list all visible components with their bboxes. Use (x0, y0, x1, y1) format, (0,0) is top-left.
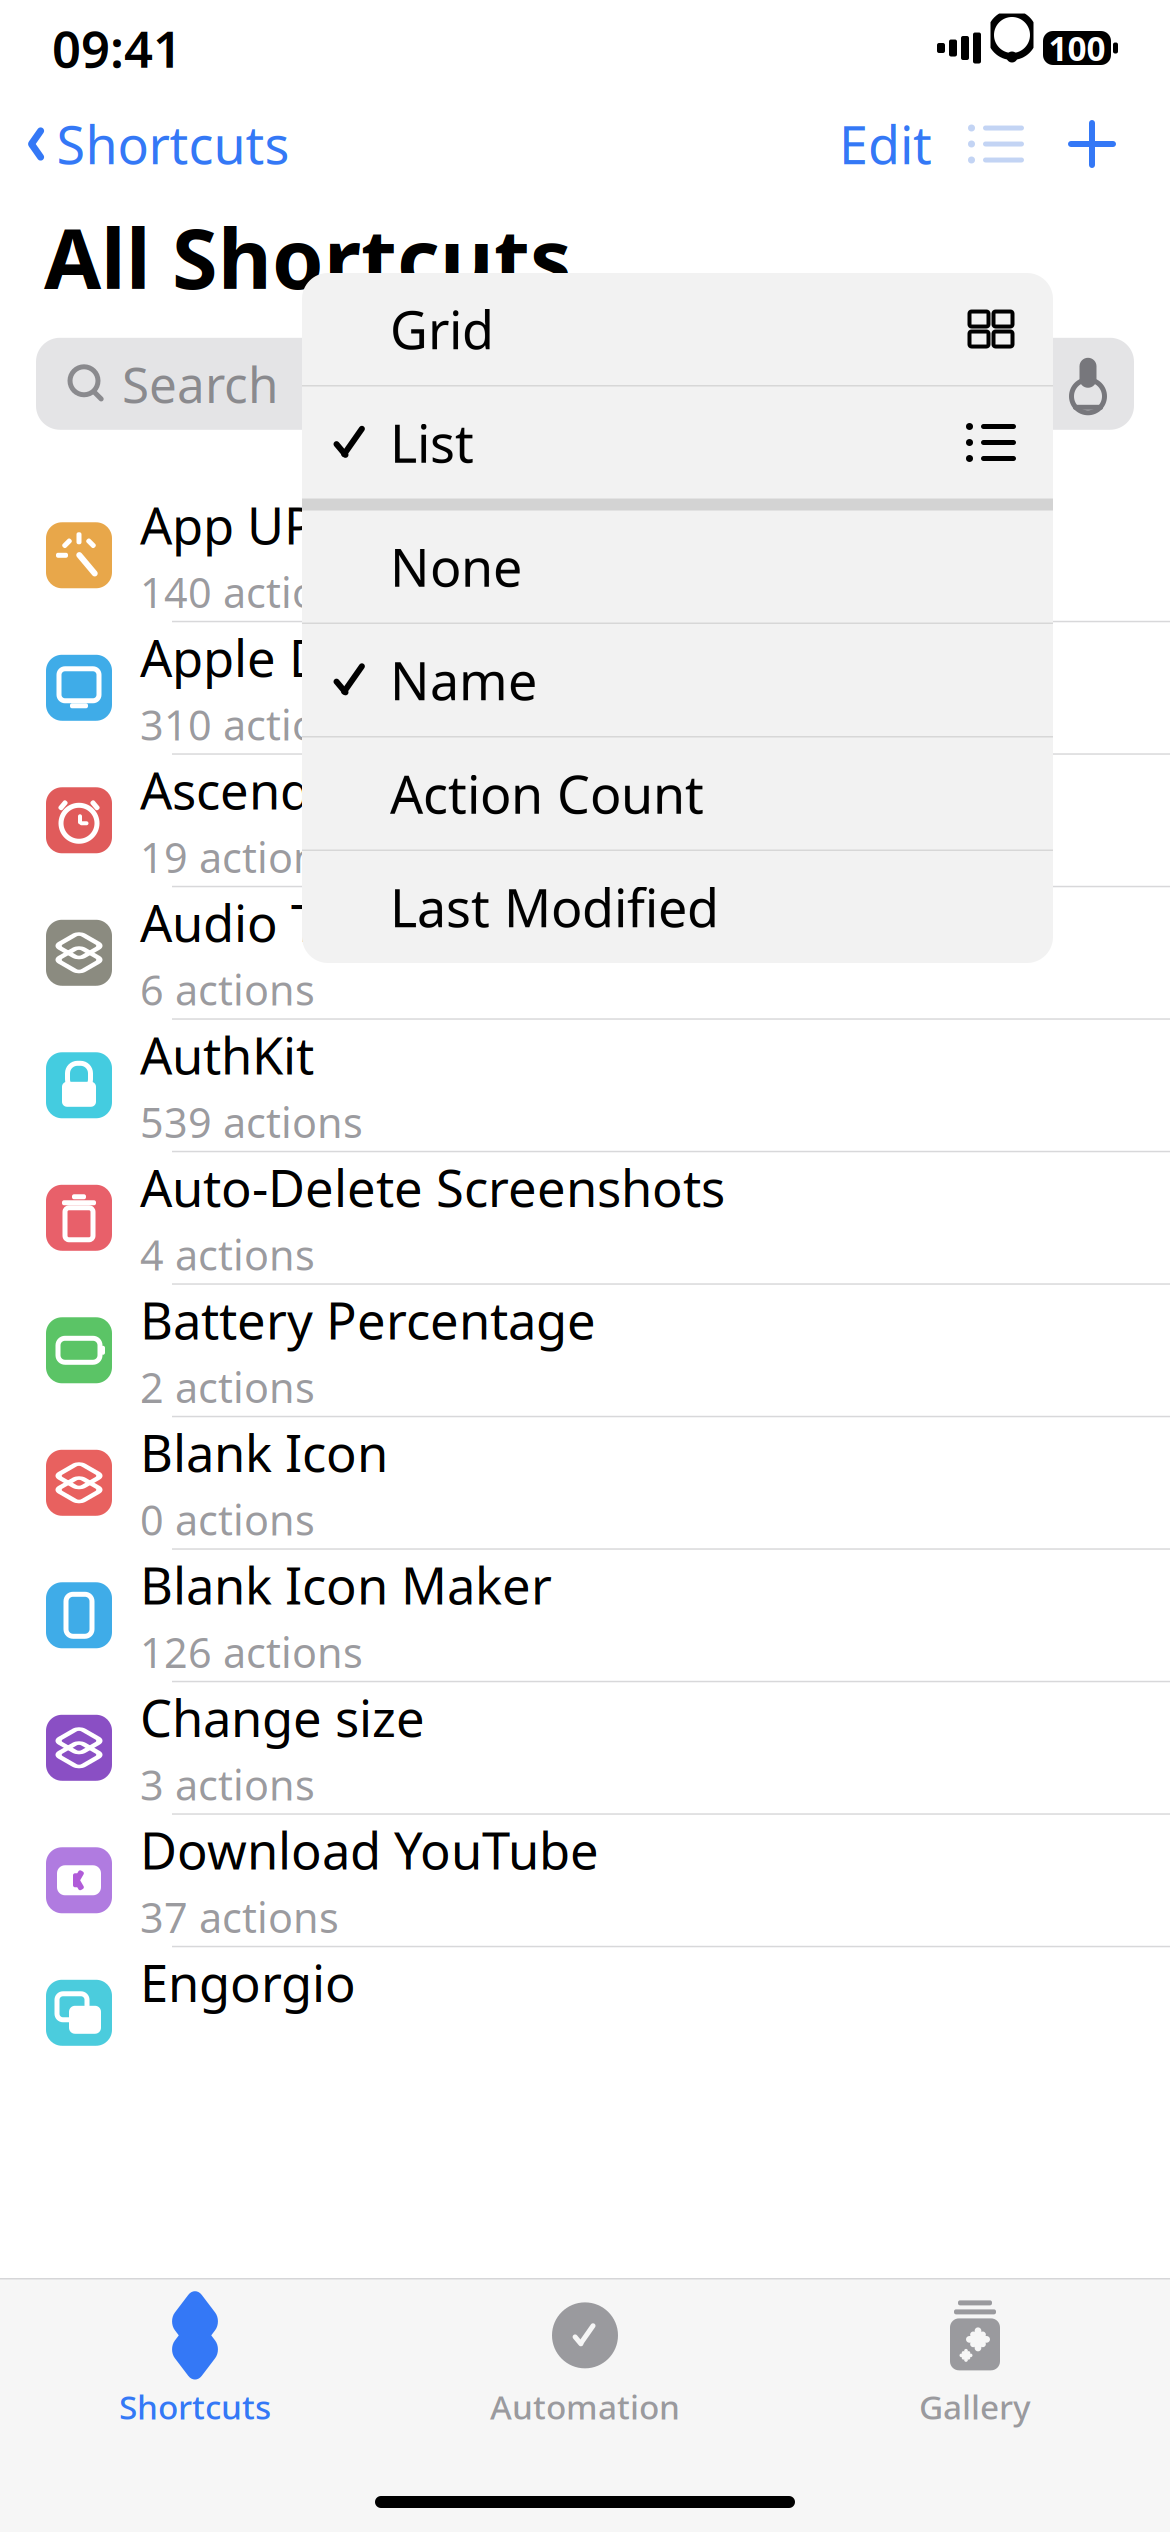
button[interactable]: Search (36, 338, 1134, 430)
button[interactable]: App UPC (0, 490, 1170, 622)
staticText: All Shortcuts (44, 202, 571, 312)
staticText: Name (390, 645, 537, 715)
staticText: None (390, 532, 522, 601)
staticText: Battery Percentage (140, 1286, 596, 1353)
button[interactable]: AuthKit (0, 1020, 1170, 1152)
button[interactable]: Action Count (302, 737, 1053, 849)
staticText: AuthKit (140, 1021, 314, 1088)
staticText: 140 actions (140, 564, 363, 619)
button[interactable]: None (302, 510, 1053, 622)
staticText: Ascending Song Alarm (140, 756, 674, 823)
staticText: App UPC (140, 491, 347, 558)
button[interactable]: Change size (0, 1682, 1170, 1815)
staticText: Shortcuts (119, 2384, 271, 2429)
staticText: Audio To M4r (140, 889, 456, 956)
staticText: 19 actions (140, 829, 339, 884)
button[interactable]: Download YouTube (0, 1815, 1170, 1947)
staticText: Action Count (390, 759, 704, 828)
staticText: 2 actions (140, 1359, 315, 1414)
button[interactable]: Engorgio (0, 1947, 1170, 2078)
button[interactable]: Automation (390, 2280, 780, 2429)
staticText: 310 actions (140, 697, 363, 752)
button[interactable]: Shortcuts (0, 95, 289, 193)
button[interactable]: Apple Display (0, 622, 1170, 755)
staticText: Engorgio (140, 1949, 356, 2016)
button[interactable]: Audio To M4r (0, 887, 1170, 1020)
staticText: 09:41 (52, 14, 182, 82)
staticText: Edit (839, 109, 932, 179)
staticText: List (390, 408, 474, 477)
button[interactable]: Blank Icon Maker (0, 1550, 1170, 1682)
button[interactable]: Battery Percentage (0, 1285, 1170, 1417)
button[interactable]: Name (302, 624, 1053, 736)
button[interactable]: Create Shortcut (1044, 108, 1140, 180)
button[interactable]: Ascending Song Alarm (0, 755, 1170, 887)
staticText: 4 actions (140, 1227, 315, 1282)
staticText: Automation (490, 2384, 680, 2429)
staticText: Download YouTube (140, 1816, 599, 1883)
staticText: Gallery (919, 2384, 1031, 2429)
button[interactable]: List (302, 386, 1053, 498)
staticText: Change size (140, 1684, 425, 1751)
button[interactable]: View options (948, 108, 1044, 180)
button[interactable]: Blank Icon (0, 1417, 1170, 1550)
staticText: 100 (1048, 26, 1105, 70)
button[interactable]: Last Modified (302, 851, 1053, 963)
staticText: Last Modified (390, 872, 719, 942)
staticText: 3 actions (140, 1757, 315, 1812)
staticText: Blank Icon (140, 1419, 388, 1486)
staticText: 37 actions (140, 1889, 339, 1944)
staticText: Blank Icon Maker (140, 1551, 552, 1618)
staticText: Apple Display (140, 624, 461, 691)
button[interactable]: Auto-Delete Screenshots (0, 1152, 1170, 1285)
staticText: 539 actions (140, 1094, 363, 1149)
staticText: Auto-Delete Screenshots (140, 1154, 725, 1221)
button[interactable]: Shortcuts (0, 2280, 390, 2429)
staticText: Grid (390, 294, 494, 364)
staticText: Search (122, 351, 278, 416)
button[interactable]: Grid (302, 273, 1053, 385)
staticText: 126 actions (140, 1624, 363, 1679)
staticText: 6 actions (140, 962, 315, 1017)
staticText: Shortcuts (56, 109, 289, 179)
button[interactable]: Gallery (780, 2280, 1170, 2429)
button[interactable]: Edit (823, 95, 948, 193)
staticText: 0 actions (140, 1492, 315, 1547)
